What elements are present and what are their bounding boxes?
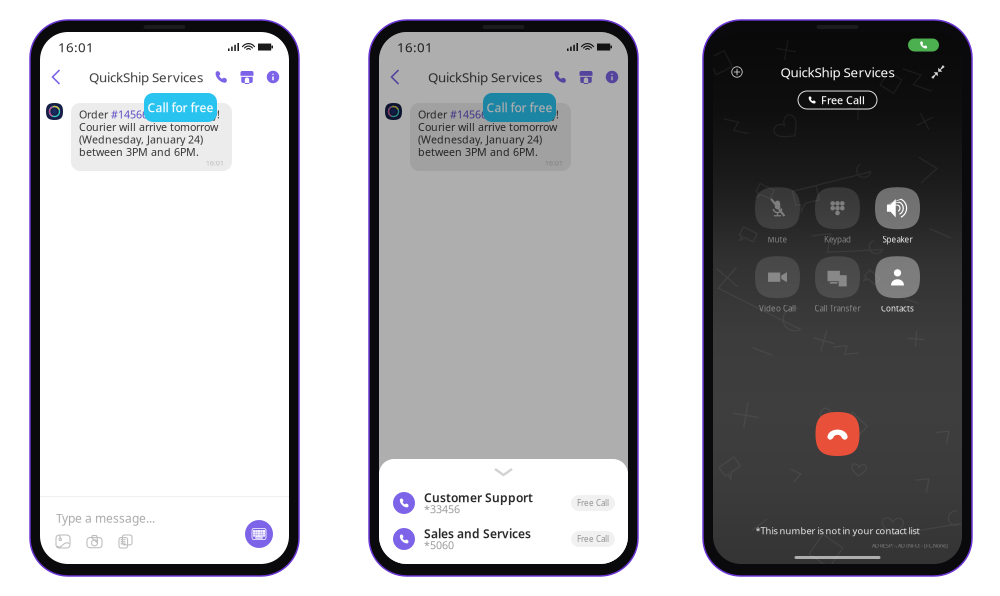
staticText: Keypad: [824, 234, 851, 245]
button[interactable]: Free Call: [798, 91, 877, 109]
button[interactable]: Call: [211, 62, 231, 92]
staticText: Type a message...: [56, 510, 155, 526]
staticText: Call for free: [147, 99, 213, 115]
button[interactable]: Customer Support: [379, 485, 628, 521]
button[interactable]: Video Call: [747, 255, 807, 315]
staticText: Courier will arrive tomorrow: [79, 120, 218, 134]
staticText: Call for free: [486, 99, 552, 115]
staticText: Contacts: [881, 303, 914, 314]
button[interactable]: Call for free: [144, 93, 217, 122]
staticText: QuickShip Services: [428, 68, 542, 86]
staticText: 16:01: [545, 159, 563, 167]
button[interactable]: Contacts: [867, 255, 927, 315]
button[interactable]: Info: [263, 62, 283, 92]
staticText: *33456: [424, 502, 460, 516]
button[interactable]: Document: [119, 535, 132, 548]
button[interactable]: Call: [550, 62, 570, 92]
button[interactable]: Mute: [747, 186, 807, 246]
staticText: Free Call: [821, 93, 865, 107]
staticText: 16:01: [58, 38, 94, 56]
button[interactable]: Keyboard: [245, 520, 273, 548]
button[interactable]: Camera: [426, 535, 441, 548]
button[interactable]: Back: [45, 62, 67, 92]
button[interactable]: Camera: [87, 535, 102, 548]
staticText: Free Call: [577, 498, 609, 508]
staticText: Order: [418, 107, 450, 121]
staticText: Sales and Services: [424, 525, 531, 541]
button[interactable]: Call Transfer: [807, 255, 867, 315]
button[interactable]: Back: [384, 62, 406, 92]
staticText: Mute: [767, 234, 787, 245]
button[interactable]: Shop: [576, 62, 596, 92]
staticText: Call Transfer: [814, 303, 860, 314]
staticText: *5060: [424, 538, 454, 552]
staticText: between 3PM and 6PM.: [418, 145, 538, 159]
staticText: Speaker: [882, 234, 912, 245]
staticText: Type a message...: [395, 510, 494, 526]
button[interactable]: Sales and Services: [379, 521, 628, 557]
button[interactable]: End call: [815, 412, 859, 456]
button[interactable]: Photo: [56, 535, 70, 548]
staticText: 16:01: [206, 159, 224, 167]
button[interactable]: Info: [602, 62, 622, 92]
button[interactable]: Keypad: [807, 186, 867, 246]
button[interactable]: Minimize: [927, 60, 949, 84]
button[interactable]: Document: [458, 535, 471, 548]
staticText: (Wednesday, January 24): [79, 132, 203, 146]
staticText: AD RESP: -, AD INFO: - [FL.None]: [872, 542, 948, 549]
staticText: Free Call: [577, 534, 609, 544]
staticText: Customer Support: [424, 489, 533, 505]
staticText: *This number is not in your contact list: [755, 524, 919, 537]
staticText: Courier will arrive tomorrow: [418, 120, 557, 134]
staticText: QuickShip Services: [780, 63, 894, 81]
button[interactable]: Call for free: [483, 93, 556, 122]
button[interactable]: Speaker: [867, 186, 927, 246]
button[interactable]: Keyboard: [584, 520, 612, 548]
button[interactable]: Add call: [726, 60, 748, 84]
button[interactable]: Shop: [237, 62, 257, 92]
staticText: is on the way!: [148, 107, 220, 121]
staticText: 16:01: [397, 38, 433, 56]
staticText: Order: [79, 107, 111, 121]
staticText: between 3PM and 6PM.: [79, 145, 199, 159]
button[interactable]: Collapse: [379, 459, 628, 485]
staticText: is on the way!: [487, 107, 559, 121]
staticText: #14566: [450, 107, 487, 121]
staticText: QuickShip Services: [89, 68, 203, 86]
staticText: #14566: [111, 107, 148, 121]
button[interactable]: Photo: [395, 535, 409, 548]
staticText: (Wednesday, January 24): [418, 132, 542, 146]
staticText: Video Call: [759, 303, 796, 314]
